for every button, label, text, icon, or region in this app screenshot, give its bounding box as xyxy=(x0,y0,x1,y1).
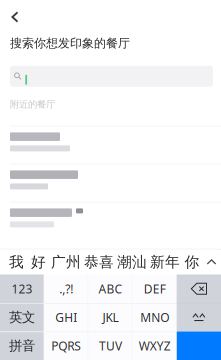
button[interactable]: Symbols xyxy=(177,303,221,331)
staticText: 广州 xyxy=(51,253,81,271)
staticText: 搜索你想发印象的餐厅 xyxy=(10,36,130,51)
button[interactable] xyxy=(0,202,221,240)
button[interactable]: 我 xyxy=(5,250,27,274)
button[interactable]: 你 xyxy=(181,250,202,274)
staticText: TUV xyxy=(99,338,122,354)
staticText: WXYZ xyxy=(139,338,171,354)
button[interactable]: Show more candidates xyxy=(202,250,220,274)
staticText: 你 xyxy=(184,253,199,271)
button[interactable]: 恭喜 xyxy=(82,250,115,274)
staticText: MNO xyxy=(140,309,169,325)
button[interactable] xyxy=(0,164,221,202)
staticText: JKL xyxy=(102,309,118,325)
staticText: GHI xyxy=(55,309,77,325)
button[interactable]: Back xyxy=(0,5,30,29)
button[interactable]: JKL xyxy=(88,303,133,331)
staticText: 我 xyxy=(9,253,24,271)
button[interactable]: .,?! xyxy=(44,274,88,303)
staticText: .,?! xyxy=(59,281,73,297)
staticText: PQRS xyxy=(51,338,81,354)
staticText: 好 xyxy=(31,253,46,271)
staticText: 英文 xyxy=(9,309,35,325)
button[interactable]: Delete xyxy=(177,274,221,303)
button[interactable]: 新年 xyxy=(148,250,181,274)
button[interactable]: ABC xyxy=(88,274,133,303)
button[interactable]: 英文 xyxy=(0,303,44,331)
button[interactable] xyxy=(10,66,213,87)
staticText: 新年 xyxy=(150,253,180,271)
button[interactable]: 123 xyxy=(0,274,44,303)
button[interactable]: GHI xyxy=(44,303,88,331)
button[interactable]: WXYZ xyxy=(133,331,177,360)
button[interactable]: 广州 xyxy=(49,250,82,274)
staticText: 恭喜 xyxy=(84,253,114,271)
staticText: 附近的餐厅 xyxy=(10,99,55,110)
button[interactable]: TUV xyxy=(88,331,133,360)
staticText: 潮汕 xyxy=(117,253,147,271)
button[interactable]: DEF xyxy=(133,274,177,303)
button[interactable]: PQRS xyxy=(44,331,88,360)
staticText: 123 xyxy=(12,281,33,297)
button[interactable]: 潮汕 xyxy=(115,250,148,274)
button[interactable] xyxy=(0,126,221,164)
staticText: DEF xyxy=(144,281,166,297)
button[interactable]: MNO xyxy=(133,303,177,331)
button[interactable]: 好 xyxy=(27,250,49,274)
staticText: 拼音 xyxy=(9,338,35,354)
staticText: ABC xyxy=(98,281,122,297)
button[interactable]: 拼音 xyxy=(0,331,44,360)
